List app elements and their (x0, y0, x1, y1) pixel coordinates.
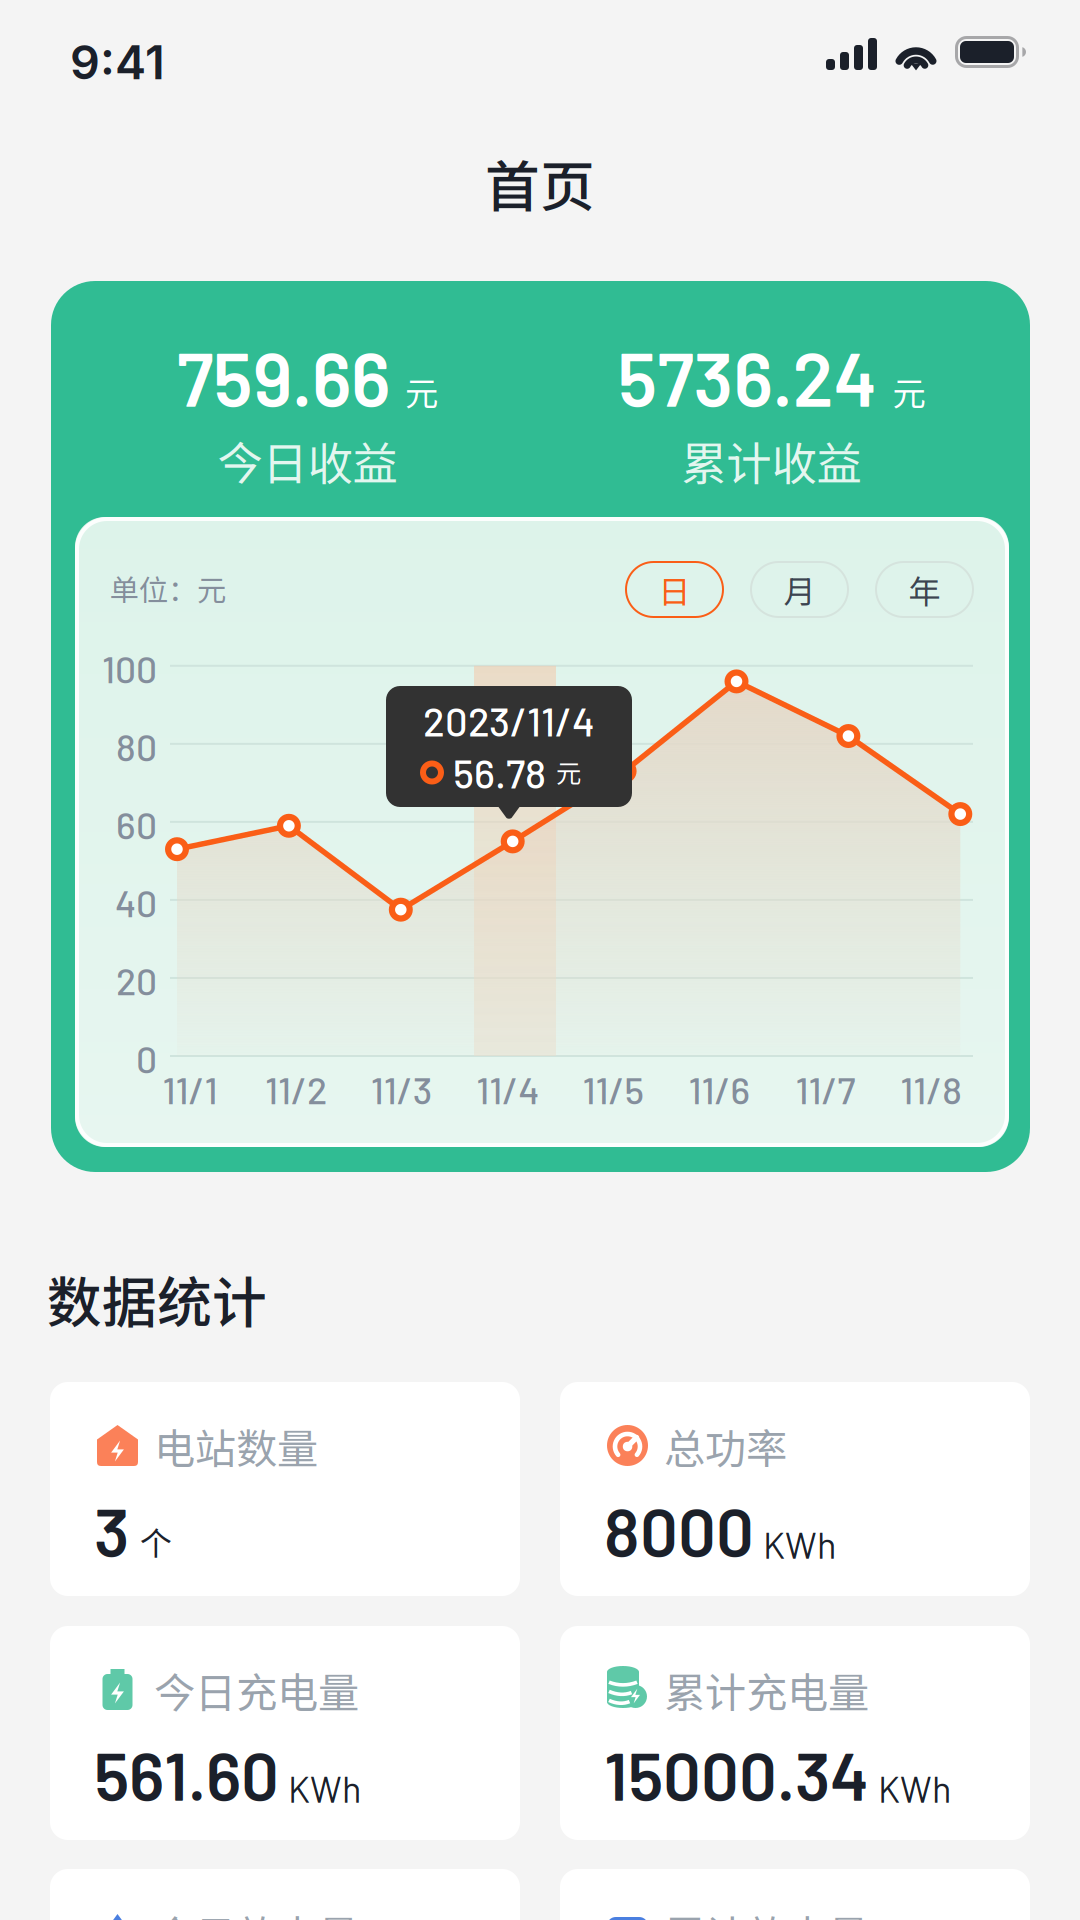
staticText: 元 (556, 753, 581, 790)
staticText: 11/7 (795, 1067, 855, 1112)
staticText: 0 (136, 1036, 157, 1081)
button[interactable]: 今日充电量 (50, 1626, 520, 1840)
staticText: 11/3 (371, 1067, 433, 1112)
button[interactable]: 日 (625, 561, 724, 618)
staticText: 80 (116, 724, 157, 769)
staticText: 3 (94, 1490, 129, 1570)
staticText: 单位：元 (110, 567, 226, 609)
staticText: 11/8 (900, 1067, 962, 1112)
button[interactable]: 总功率 (560, 1382, 1030, 1596)
staticText: 11/4 (476, 1067, 539, 1112)
staticText: 总功率 (664, 1416, 787, 1476)
staticText: KWh (878, 1767, 951, 1810)
staticText: 100 (102, 646, 157, 691)
staticText: 数据统计 (47, 1259, 267, 1338)
staticText: 元 (405, 367, 438, 416)
staticText: 个 (140, 1518, 172, 1564)
staticText: 40 (115, 880, 157, 925)
staticText: 累计放电量 (664, 1903, 869, 1920)
staticText: 月 (783, 566, 815, 613)
button[interactable]: 年 (875, 561, 974, 618)
staticText: 20 (116, 958, 157, 1003)
staticText: 561.60 (94, 1734, 279, 1814)
staticText: 9:41 (70, 34, 165, 90)
staticText: 759.66 (177, 332, 390, 422)
staticText: 日 (658, 566, 690, 613)
button[interactable]: 累计充电量 (560, 1626, 1030, 1840)
staticText: 8000 (604, 1490, 754, 1570)
staticText: 11/5 (583, 1067, 645, 1112)
button[interactable]: 今日放电量 (50, 1869, 520, 1920)
staticText: 电站数量 (154, 1416, 318, 1476)
staticText: 15000.34 (604, 1734, 869, 1814)
staticText: 累计充电量 (664, 1660, 869, 1720)
staticText: 今日充电量 (154, 1660, 359, 1720)
staticText: KWh (763, 1523, 836, 1566)
staticText: 年 (908, 566, 940, 613)
staticText: 60 (116, 802, 157, 847)
button[interactable]: 累计放电量 (560, 1869, 1030, 1920)
staticText: 11/6 (688, 1067, 750, 1112)
staticText: 今日收益 (217, 428, 397, 493)
button[interactable]: 月 (750, 561, 849, 618)
staticText: 11/1 (162, 1067, 217, 1112)
staticText: 首页 (485, 143, 595, 222)
button[interactable]: 电站数量 (50, 1382, 520, 1596)
staticText: 累计收益 (681, 428, 861, 493)
staticText: 11/2 (265, 1067, 327, 1112)
staticText: 56.78 (453, 748, 546, 796)
staticText: 2023/11/4 (423, 696, 595, 744)
staticText: 元 (892, 367, 925, 416)
staticText: KWh (288, 1767, 361, 1810)
staticText: 5736.24 (617, 332, 877, 422)
staticText: 今日放电量 (154, 1903, 359, 1920)
